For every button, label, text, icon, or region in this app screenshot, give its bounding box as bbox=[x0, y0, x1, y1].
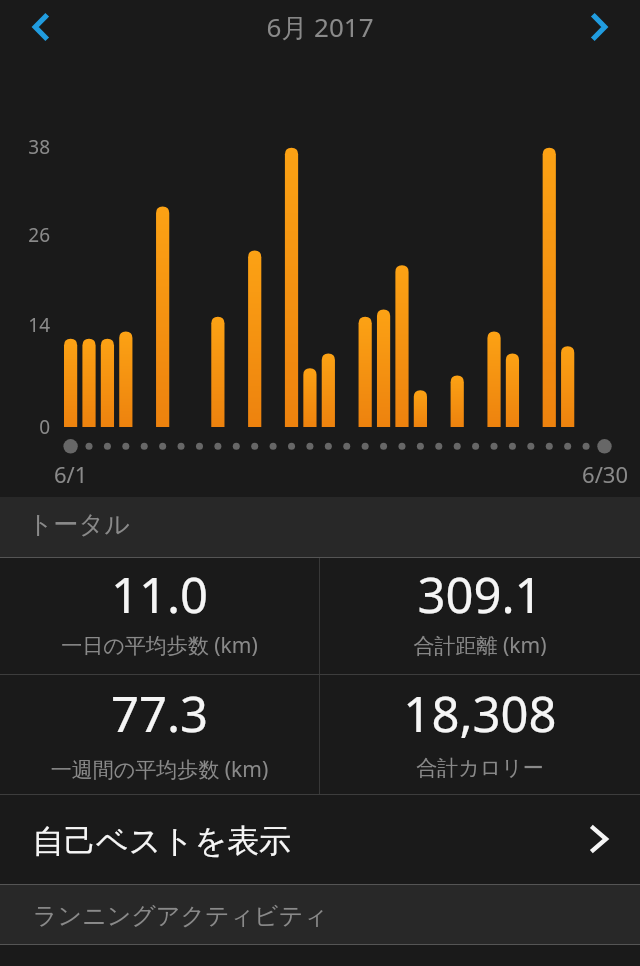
staticText: 14 bbox=[0, 312, 50, 338]
staticText: 一週間の平均歩数 (km) bbox=[0, 755, 319, 784]
button[interactable]: Previous month bbox=[12, 0, 68, 54]
staticText: 38 bbox=[0, 134, 50, 160]
button[interactable]: 309.1 bbox=[320, 558, 640, 674]
staticText: 6/30 bbox=[540, 459, 628, 489]
button[interactable]: Next month bbox=[572, 0, 628, 54]
staticText: 合計カロリー bbox=[320, 755, 640, 781]
staticText: 合計距離 (km) bbox=[320, 631, 640, 660]
staticText: 77.3 bbox=[0, 680, 319, 747]
staticText: 一日の平均歩数 (km) bbox=[0, 631, 319, 660]
button[interactable]: 18,308 bbox=[320, 675, 640, 794]
staticText: 0 bbox=[0, 414, 50, 440]
button[interactable]: 11.0 bbox=[0, 558, 319, 674]
staticText: 11.0 bbox=[0, 561, 319, 628]
staticText: 6/1 bbox=[54, 459, 88, 489]
staticText: 6月 2017 bbox=[170, 9, 470, 45]
other: Show personal best bbox=[591, 826, 608, 852]
button[interactable]: 77.3 bbox=[0, 675, 319, 794]
staticText: 18,308 bbox=[320, 680, 640, 747]
staticText: トータル bbox=[28, 509, 130, 540]
staticText: 26 bbox=[0, 222, 50, 248]
button[interactable]: 自己ベストを表示 bbox=[0, 795, 640, 884]
staticText: ランニングアクティビティ bbox=[33, 901, 328, 931]
staticText: 309.1 bbox=[320, 561, 640, 628]
staticText: 自己ベストを表示 bbox=[32, 821, 291, 861]
